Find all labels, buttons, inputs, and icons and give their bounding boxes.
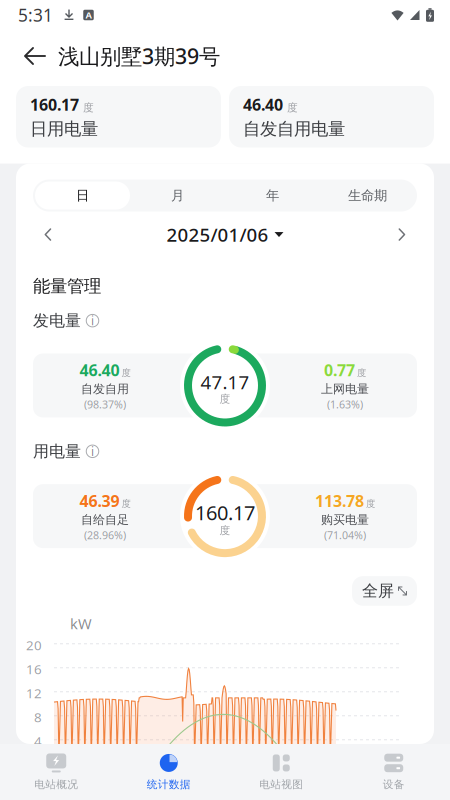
staticText: (28.96%) <box>84 528 126 542</box>
staticText: 上网电量 <box>321 382 369 396</box>
staticText: 自发自用 <box>81 382 129 396</box>
staticText: 生命期 <box>348 187 387 204</box>
staticText: kW <box>70 614 92 633</box>
staticText: 月 <box>171 187 184 204</box>
staticText: 发电量 <box>33 311 81 330</box>
button[interactable]: 电站概况 <box>0 744 112 800</box>
staticText: 46.39 <box>79 490 119 511</box>
staticText: 8 <box>34 708 42 726</box>
button[interactable]: 电站视图 <box>225 744 337 800</box>
staticText: 度 <box>357 367 366 379</box>
staticText: 46.40 <box>243 94 283 115</box>
staticText: 2025/01/06 <box>166 222 268 247</box>
staticText: 度 <box>219 392 230 405</box>
staticText: 12 <box>26 684 42 702</box>
button[interactable]: 设备 <box>337 744 450 800</box>
staticText: 电站视图 <box>259 778 303 791</box>
staticText: 浅山别墅3期39号 <box>58 42 220 70</box>
staticText: 16 <box>26 660 42 678</box>
staticText: 度 <box>287 101 298 114</box>
staticText: 46.40 <box>79 359 119 381</box>
staticText: 20 <box>26 636 42 654</box>
staticText: 电站概况 <box>34 778 78 791</box>
staticText: 160.17 <box>30 94 79 115</box>
staticText: 用电量 <box>33 441 81 461</box>
button[interactable]: 生命期 <box>320 181 415 209</box>
staticText: (1.63%) <box>327 397 363 412</box>
staticText: i <box>91 313 94 329</box>
button[interactable]: 全屏 <box>352 576 417 606</box>
staticText: 度 <box>121 367 130 379</box>
staticText: i <box>91 443 94 459</box>
staticText: 度 <box>121 498 130 509</box>
staticText: 全屏 <box>362 581 394 601</box>
staticText: 日用电量 <box>30 118 98 139</box>
staticText: (71.04%) <box>324 528 366 542</box>
staticText: 度 <box>219 524 230 537</box>
staticText: 日 <box>76 187 89 204</box>
staticText: 度 <box>83 101 94 114</box>
button[interactable]: Previous day <box>26 217 70 251</box>
button[interactable]: 2025/01/06 <box>166 217 283 251</box>
staticText: 160.17 <box>195 499 255 526</box>
staticText: 统计数据 <box>147 778 191 791</box>
staticText: 5:31 <box>18 3 53 26</box>
staticText: (98.37%) <box>84 397 126 412</box>
button[interactable]: 年 <box>225 181 320 209</box>
staticText: 能量管理 <box>33 275 101 297</box>
staticText: 47.17 <box>200 369 249 394</box>
staticText: 0.77 <box>324 359 355 381</box>
staticText: 度 <box>366 498 375 509</box>
button[interactable]: Back <box>12 33 58 79</box>
staticText: 购买电量 <box>321 512 369 527</box>
button[interactable]: Next day <box>380 217 424 251</box>
button[interactable]: 统计数据 <box>112 744 225 800</box>
staticText: 设备 <box>383 778 405 791</box>
staticText: 自发自用电量 <box>243 118 345 139</box>
button[interactable]: 月 <box>130 181 225 209</box>
staticText: 年 <box>266 187 279 204</box>
staticText: A <box>85 9 91 21</box>
staticText: 4 <box>34 732 42 750</box>
staticText: 自给自足 <box>81 512 129 527</box>
staticText: 113.78 <box>315 490 364 511</box>
button[interactable]: 日 <box>35 181 130 209</box>
